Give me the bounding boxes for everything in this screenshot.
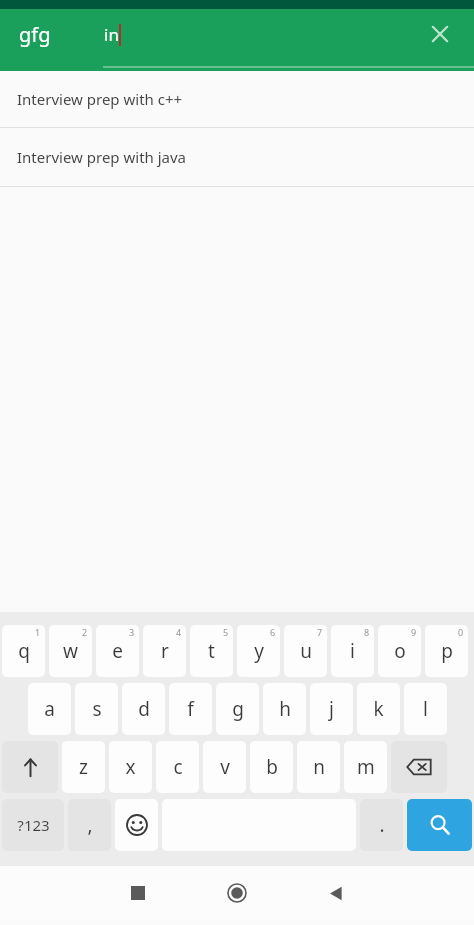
button[interactable]: n	[297, 741, 340, 793]
button[interactable]: Backspace	[391, 741, 447, 793]
button[interactable]: y	[237, 625, 280, 677]
staticText: 5	[223, 626, 229, 638]
staticText: s	[92, 696, 102, 722]
button[interactable]: e	[96, 625, 139, 677]
staticText: w	[63, 638, 78, 664]
button[interactable]: ?123	[2, 799, 64, 851]
staticText: ?123	[17, 815, 50, 835]
staticText: Interview prep with c++	[17, 89, 183, 109]
staticText: 2	[82, 626, 88, 638]
staticText: t	[208, 638, 215, 664]
staticText: n	[313, 754, 325, 780]
button[interactable]: Back	[311, 869, 359, 917]
staticText: u	[300, 638, 312, 664]
staticText: d	[138, 696, 150, 722]
button[interactable]: Home	[213, 869, 261, 917]
button[interactable]: g	[216, 683, 259, 735]
button[interactable]: a	[28, 683, 71, 735]
staticText: ,	[87, 812, 93, 838]
staticText: b	[266, 754, 278, 780]
button[interactable]: Recent apps	[114, 869, 162, 917]
button[interactable]: h	[263, 683, 306, 735]
staticText: Interview prep with java	[17, 147, 187, 167]
staticText: g	[232, 696, 244, 722]
staticText: x	[125, 754, 136, 780]
button[interactable]: Emoji	[115, 799, 158, 851]
button[interactable]: x	[109, 741, 152, 793]
staticText: 7	[317, 626, 323, 638]
staticText: h	[279, 696, 291, 722]
button[interactable]: k	[357, 683, 400, 735]
button[interactable]: p	[425, 625, 468, 677]
staticText: 4	[176, 626, 182, 638]
staticText: 9	[411, 626, 417, 638]
button[interactable]: Shift	[2, 741, 58, 793]
staticText: o	[394, 638, 406, 664]
staticText: gfg	[19, 21, 51, 48]
button[interactable]: r	[143, 625, 186, 677]
button[interactable]: m	[344, 741, 387, 793]
button[interactable]: t	[190, 625, 233, 677]
staticText: k	[373, 696, 384, 722]
button[interactable]: Search	[407, 799, 472, 851]
staticText: m	[357, 754, 375, 780]
staticText: i	[350, 638, 355, 664]
button[interactable]: f	[169, 683, 212, 735]
button[interactable]: Interview prep with java	[0, 128, 474, 186]
button[interactable]: c	[156, 741, 199, 793]
button[interactable]: u	[284, 625, 327, 677]
staticText: 8	[364, 626, 370, 638]
button[interactable]: b	[250, 741, 293, 793]
staticText: z	[79, 754, 88, 780]
button[interactable]: i	[331, 625, 374, 677]
button[interactable]: Interview prep with c++	[0, 71, 474, 127]
staticText: y	[254, 638, 264, 664]
staticText: in	[104, 23, 119, 46]
staticText: c	[173, 754, 183, 780]
button[interactable]: j	[310, 683, 353, 735]
staticText: v	[220, 754, 230, 780]
button[interactable]: ,	[68, 799, 111, 851]
button[interactable]: o	[378, 625, 421, 677]
button[interactable]: q	[2, 625, 45, 677]
button[interactable]: s	[75, 683, 118, 735]
staticText: 6	[270, 626, 276, 638]
staticText: p	[441, 638, 453, 664]
button[interactable]: v	[203, 741, 246, 793]
staticText: .	[379, 812, 385, 838]
staticText: 1	[35, 626, 41, 638]
button[interactable]: l	[404, 683, 447, 735]
button[interactable]: w	[49, 625, 92, 677]
button[interactable]: d	[122, 683, 165, 735]
staticText: r	[161, 638, 169, 664]
staticText: 0	[458, 626, 464, 638]
staticText: 3	[129, 626, 135, 638]
button[interactable]: z	[62, 741, 105, 793]
staticText: j	[329, 696, 334, 722]
staticText: f	[187, 696, 194, 722]
button[interactable]: Clear search	[420, 14, 460, 54]
staticText: l	[423, 696, 428, 722]
staticText: a	[44, 696, 55, 722]
staticText: q	[18, 638, 30, 664]
button[interactable]: .	[360, 799, 403, 851]
staticText: e	[112, 638, 123, 664]
